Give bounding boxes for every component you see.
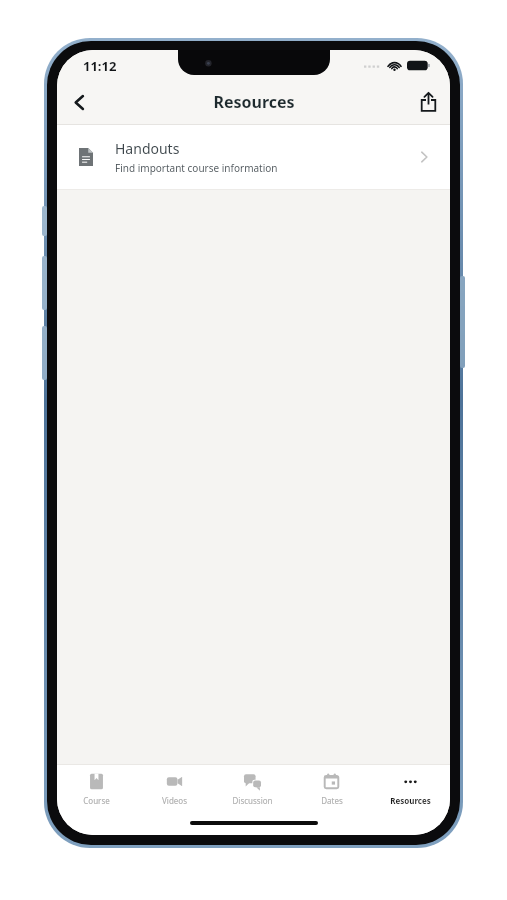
staticText: Handouts (115, 139, 180, 158)
button[interactable]: Share (406, 80, 450, 124)
staticText: Resources (213, 91, 295, 113)
button[interactable]: Course (57, 765, 135, 813)
staticText: 11:12 (83, 57, 117, 75)
button[interactable]: Dates (292, 765, 371, 813)
button[interactable]: Discussion (213, 765, 292, 813)
staticText: Discussion (232, 795, 273, 806)
staticText: Resources (390, 795, 431, 806)
staticText: Find important course information (115, 161, 278, 175)
staticText: Course (83, 795, 110, 806)
button[interactable]: Handouts (57, 125, 450, 189)
button[interactable]: Resources (371, 765, 450, 813)
staticText: Videos (162, 795, 187, 806)
button[interactable]: Videos (135, 765, 213, 813)
button[interactable]: Back (57, 80, 101, 124)
staticText: Dates (321, 795, 343, 806)
